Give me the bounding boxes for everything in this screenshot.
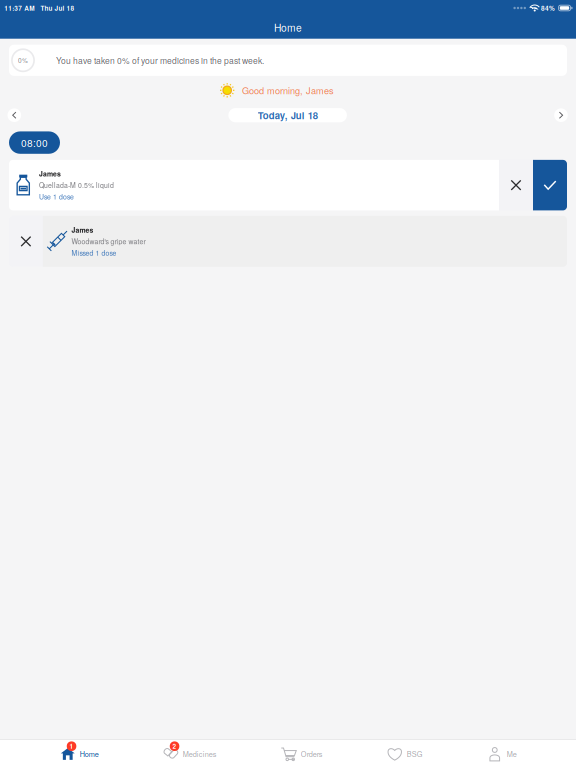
staticText: Good morning, James — [242, 84, 334, 97]
staticText: 84% — [541, 3, 555, 13]
staticText: Thu Jul 18 — [40, 3, 74, 13]
button[interactable]: Me — [486, 744, 517, 764]
button[interactable]: Take dose — [533, 160, 567, 210]
button[interactable]: Skip dose — [499, 160, 533, 210]
button[interactable]: Previous day — [0, 104, 28, 126]
staticText: Quellada-M 0.5% liquid — [39, 180, 114, 190]
staticText: James — [39, 169, 61, 179]
staticText: James — [71, 225, 93, 235]
button[interactable]: Today, Jul 18 — [228, 108, 347, 122]
staticText: 1 — [69, 742, 73, 751]
staticText: Woodward's gripe water — [71, 236, 145, 246]
button[interactable]: Next day — [547, 104, 575, 126]
staticText: Orders — [301, 749, 323, 759]
staticText: You have taken 0% of your medicines in t… — [56, 54, 264, 66]
button[interactable]: BSG — [386, 744, 423, 764]
staticText: Home — [80, 749, 99, 759]
staticText: 0% — [18, 56, 28, 65]
staticText: 08:00 — [21, 135, 48, 150]
staticText: 2 — [173, 742, 177, 751]
staticText: 11:37 AM — [4, 3, 34, 13]
staticText: Home — [274, 20, 302, 35]
button[interactable]: Orders — [280, 744, 323, 764]
staticText: Use 1 dose — [39, 192, 74, 201]
staticText: BSG — [407, 749, 423, 759]
staticText: Medicines — [183, 749, 217, 759]
button[interactable]: 1 — [59, 744, 99, 764]
button[interactable]: 2 — [162, 744, 217, 764]
staticText: Missed 1 dose — [71, 248, 116, 258]
staticText: Today, Jul 18 — [258, 108, 318, 122]
button[interactable]: Dismiss missed dose — [9, 216, 43, 267]
staticText: Me — [507, 749, 517, 759]
